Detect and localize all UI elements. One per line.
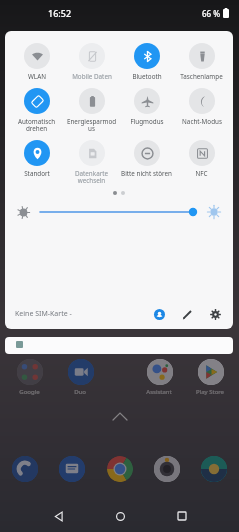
staticText: Nacht-Modus	[182, 117, 222, 126]
button[interactable]: Bitte nicht stören	[119, 140, 174, 178]
staticText: 66 %	[202, 8, 221, 19]
staticText: Flugmodus	[130, 117, 164, 126]
staticText: Datenkarte wechseln	[65, 169, 118, 185]
button[interactable]	[199, 454, 229, 484]
staticText: NFC	[195, 169, 208, 178]
button[interactable]: Datenkarte wechseln	[64, 140, 119, 185]
staticText: Assistant	[146, 388, 172, 396]
button[interactable]	[5, 337, 233, 354]
staticText: WLAN	[28, 72, 46, 81]
button[interactable]: Standort	[9, 140, 64, 178]
button[interactable]: Edit	[178, 305, 196, 323]
button[interactable]: Taschenlampe	[174, 43, 229, 81]
button[interactable]: Assistant	[142, 358, 176, 396]
button[interactable]: Play Store	[193, 358, 227, 396]
staticText: Keine SIM-Karte - Nur Notrufe	[15, 309, 82, 319]
button[interactable]: Recents	[165, 500, 199, 532]
button[interactable]: NFC	[174, 140, 229, 178]
button[interactable]	[40, 204, 199, 220]
button[interactable]	[57, 454, 87, 484]
button[interactable]	[105, 454, 135, 484]
staticText: Duo	[74, 388, 86, 396]
staticText: Mobile Daten	[72, 72, 112, 81]
button[interactable]: Google	[12, 358, 46, 396]
staticText: Taschenlampe	[180, 72, 223, 81]
staticText: Standort	[24, 169, 50, 178]
button[interactable]: Home	[103, 500, 137, 532]
button[interactable]: User	[150, 305, 168, 323]
button[interactable]	[152, 454, 182, 484]
button[interactable]: Flugmodus	[119, 88, 174, 126]
button[interactable]: Bluetooth	[119, 43, 174, 81]
button[interactable]	[10, 454, 40, 484]
staticText: Play Store	[196, 388, 224, 396]
button[interactable]: WLAN	[9, 43, 64, 81]
button[interactable]: Settings	[206, 305, 224, 323]
staticText: 16:52	[48, 7, 72, 19]
button[interactable]: Energiesparmodus	[64, 88, 119, 133]
staticText: Bitte nicht stören	[121, 169, 172, 178]
button[interactable]: Automatisch drehen	[9, 88, 64, 133]
staticText: Bluetooth	[132, 72, 162, 81]
staticText: Google	[19, 388, 40, 396]
button[interactable]: Back	[41, 500, 75, 532]
button[interactable]: Nacht-Modus	[174, 88, 229, 126]
button[interactable]: Mobile Daten	[64, 43, 119, 81]
staticText: Energiesparmodus	[65, 117, 118, 133]
staticText: Automatisch drehen	[10, 117, 63, 133]
button[interactable]: Duo	[63, 358, 97, 396]
